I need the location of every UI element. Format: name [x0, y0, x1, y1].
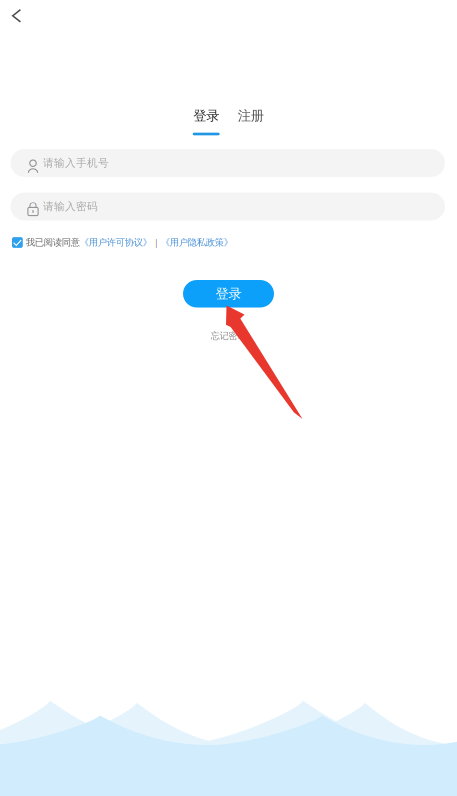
- staticText: 我已阅读同意: [26, 237, 80, 248]
- button[interactable]: 登录: [183, 280, 274, 307]
- staticText: 登录: [193, 107, 219, 124]
- staticText: 忘记密码: [210, 330, 246, 342]
- button[interactable]: 我已阅读同意: [12, 236, 272, 249]
- button[interactable]: 登录: [193, 109, 220, 135]
- staticText: 《用户隐私政策》: [161, 237, 233, 248]
- staticText: 登录: [215, 286, 241, 302]
- staticText: 注册: [238, 107, 264, 124]
- button[interactable]: 忘记密码: [210, 330, 246, 342]
- staticText: |: [152, 236, 161, 249]
- staticText: 请输入手机号: [43, 156, 109, 169]
- button[interactable]: Back: [0, 0, 40, 34]
- staticText: 请输入密码: [43, 200, 98, 213]
- staticText: 《用户许可协议》: [80, 237, 152, 248]
- button[interactable]: 注册: [237, 109, 264, 135]
